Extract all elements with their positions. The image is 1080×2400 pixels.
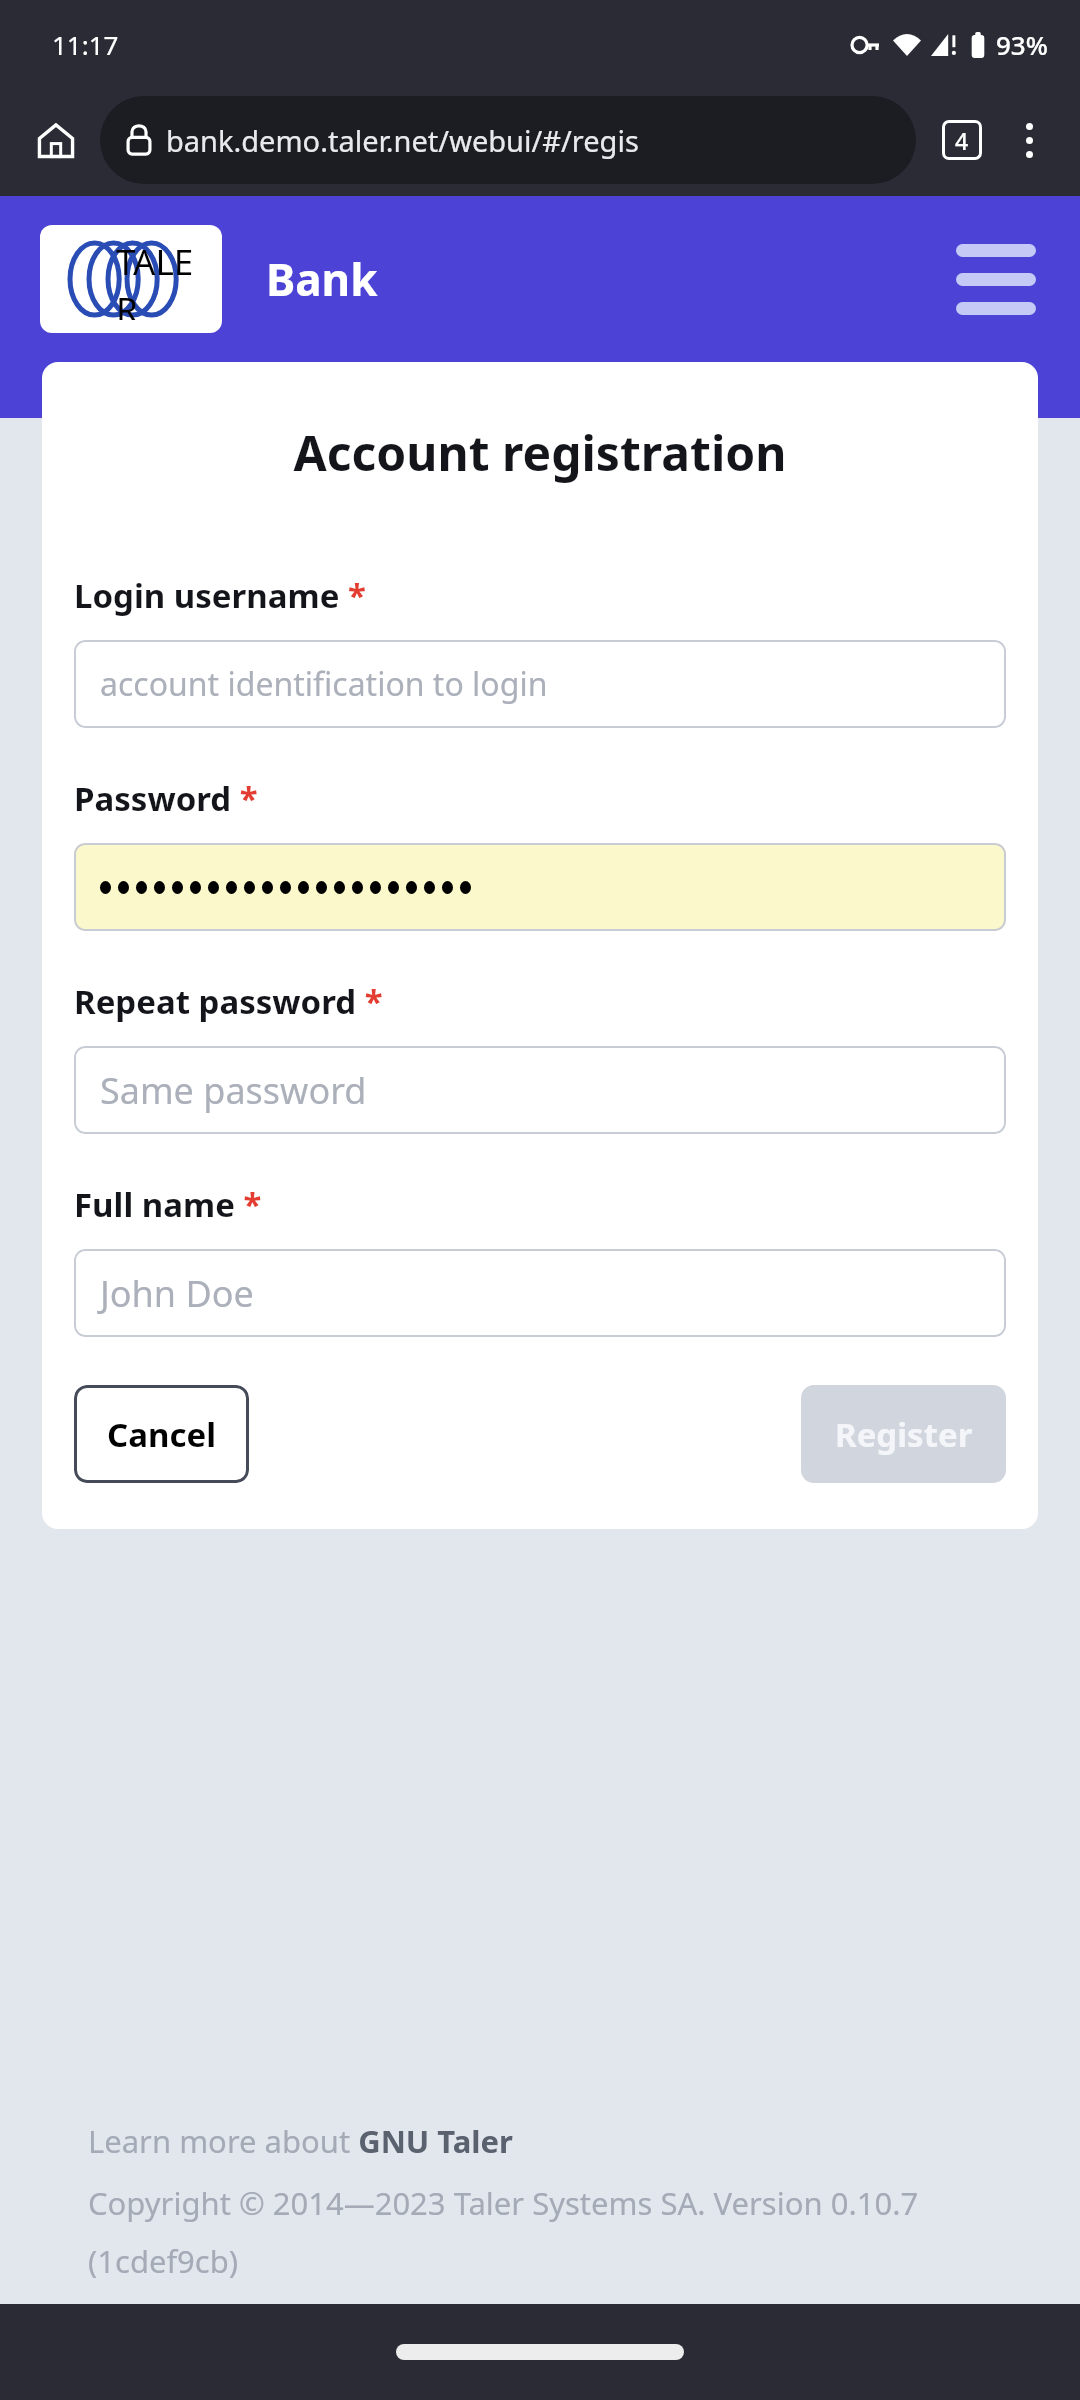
staticText: 11:17 [52,27,119,62]
staticText: Account registration [74,420,1006,485]
staticText: TALER [116,238,209,320]
staticText: Login username * [74,573,366,618]
button[interactable]: Learn more about GNU Taler [88,2120,513,2162]
button[interactable]: Same password [74,1046,1006,1134]
staticText: Password * [74,776,258,821]
button[interactable] [74,843,1006,931]
staticText: account identification to login [100,662,548,706]
button[interactable]: More options [1000,111,1058,169]
button[interactable]: John Doe [74,1249,1006,1337]
button[interactable]: TALER [40,225,222,333]
staticText: Same password [100,1066,367,1115]
button[interactable]: Menu [948,231,1044,327]
other: Home gesture bar [396,2344,684,2360]
staticText: 93% [996,27,1048,62]
staticText: Register [835,1412,973,1457]
button[interactable]: Tabs [930,108,994,172]
staticText: (1cdef9cb) [88,2240,239,2282]
staticText: John Doe [100,1269,254,1318]
staticText: Full name * [74,1182,262,1227]
staticText: Cancel [107,1412,216,1457]
button[interactable]: Cancel [74,1385,249,1483]
staticText: 4 [955,125,969,156]
button[interactable]: Register [801,1385,1006,1483]
staticText: Bank [266,249,378,309]
staticText: bank.demo.taler.net/webui/#/regis [166,121,639,160]
staticText: Copyright © 2014—2023 Taler Systems SA. … [88,2182,919,2224]
button[interactable]: Home [22,106,90,174]
staticText: Repeat password * [74,979,383,1024]
button[interactable]: bank.demo.taler.net/webui/#/regis [100,96,916,184]
button[interactable]: account identification to login [74,640,1006,728]
